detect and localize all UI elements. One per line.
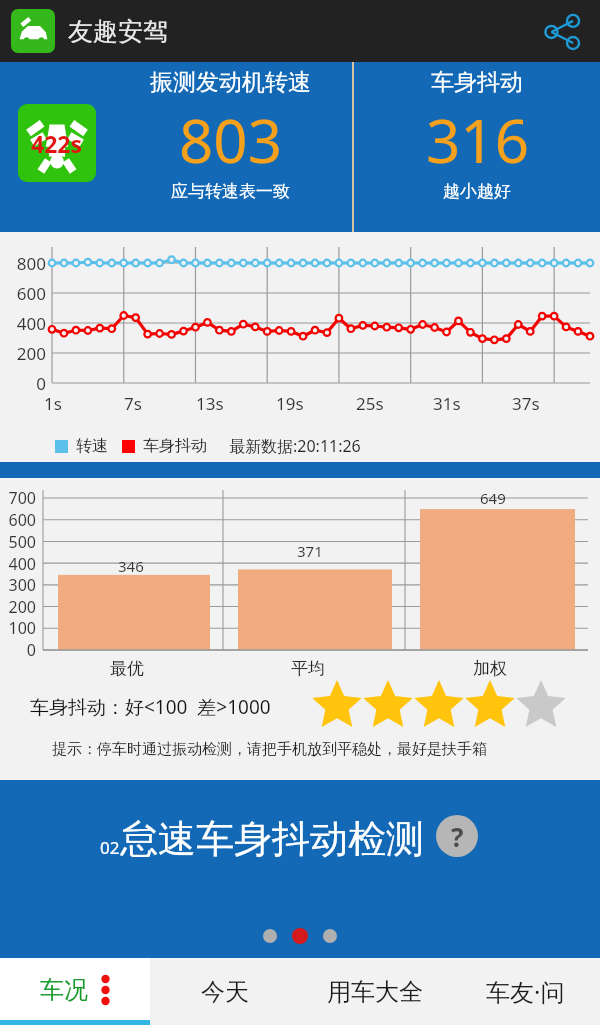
staticText: 7s [124,392,142,415]
staticText: 316 [426,99,529,181]
staticText: 37s [512,392,540,415]
staticText: 600 [0,509,36,531]
staticText: 用车大全 [327,977,423,1007]
button[interactable]: 用车大全 [300,958,450,1025]
staticText: 越小越好 [443,181,511,202]
staticText: 怠速车身抖动检测 [120,815,424,863]
staticText: 应与转速表一致 [171,181,290,202]
staticText: 19s [276,392,304,415]
staticText: 422s [31,128,83,159]
staticText: 600 [2,282,46,305]
staticText: 车身抖动 [143,436,207,456]
staticText: 1s [44,392,62,415]
staticText: 13s [196,392,224,415]
staticText: 200 [0,596,36,618]
button[interactable]: Share [538,7,586,55]
button[interactable]: Vibration test timer [18,104,96,182]
staticText: 转速 [76,436,108,456]
staticText: 最优 [110,658,144,679]
staticText: 0 [2,372,46,395]
staticText: 车身抖动 [431,68,523,97]
button[interactable]: 车况 [0,958,150,1025]
staticText: 400 [0,553,36,575]
staticText: 今天 [201,977,249,1007]
staticText: 800 [2,252,46,275]
staticText: 371 [297,541,323,561]
staticText: 友趣安驾 [68,16,168,47]
staticText: 车身抖动：好<100 差>1000 [30,694,271,720]
button[interactable]: 今天 [150,958,300,1025]
staticText: 649 [480,488,506,508]
staticText: 振测发动机转速 [150,68,311,97]
staticText: 500 [0,531,36,553]
staticText: 200 [2,342,46,365]
staticText: 平均 [291,658,325,679]
button[interactable]: Help [436,815,478,857]
staticText: 车况 [40,975,88,1005]
staticText: 700 [0,487,36,509]
staticText: 100 [0,617,36,639]
staticText: 803 [179,99,282,181]
button[interactable]: 车友·问 [450,958,600,1025]
staticText: 02 [100,836,120,859]
staticText: 31s [433,392,461,415]
staticText: 提示：停车时通过振动检测，请把手机放到平稳处，最好是扶手箱 [52,740,487,759]
staticText: 346 [118,556,144,576]
button[interactable]: App icon [11,9,55,53]
staticText: 400 [2,312,46,335]
staticText: ? [451,819,464,854]
staticText: 车友·问 [486,975,565,1008]
staticText: 加权 [473,658,507,679]
staticText: 0 [0,639,36,661]
staticText: 最新数据:20:11:26 [229,435,361,457]
staticText: 25s [356,392,384,415]
staticText: 300 [0,574,36,596]
